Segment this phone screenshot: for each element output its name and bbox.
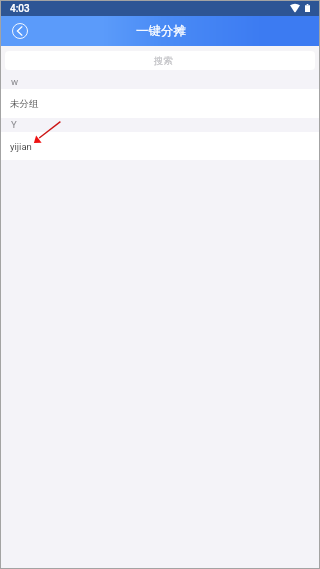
button[interactable]: 未分组 bbox=[0, 89, 320, 118]
staticText: 未分组 bbox=[10, 98, 39, 110]
staticText: w bbox=[11, 76, 19, 87]
staticText: 搜索 bbox=[154, 55, 173, 67]
staticText: yijian bbox=[10, 141, 32, 152]
button[interactable]: 搜索 bbox=[5, 51, 315, 70]
button[interactable]: yijian bbox=[0, 132, 320, 160]
button[interactable]: Back bbox=[12, 23, 28, 39]
staticText: 一键分摊 bbox=[136, 23, 186, 39]
staticText: 4:03 bbox=[10, 3, 30, 15]
staticText: Y bbox=[11, 119, 17, 130]
